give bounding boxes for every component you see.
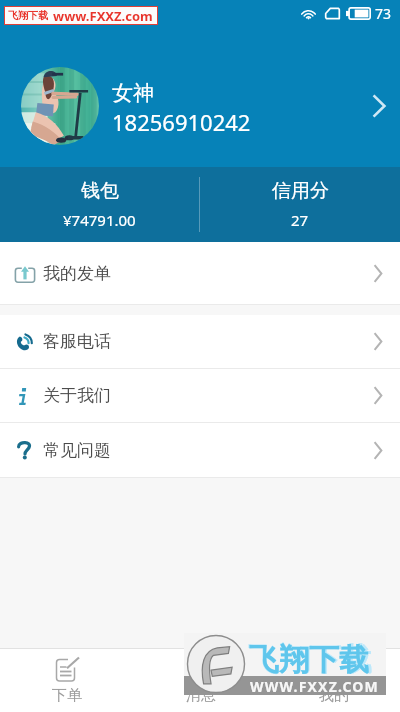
staticText: 飞翔下载: [8, 9, 48, 22]
staticText: 18256910242: [112, 107, 251, 137]
staticText: 信用分: [272, 179, 329, 203]
staticText: 我的发单: [43, 263, 111, 284]
staticText: 飞翔下载: [249, 641, 369, 679]
button[interactable]: 我的发单: [0, 242, 400, 304]
other: Profile details: [371, 94, 387, 118]
button[interactable]: 消息: [134, 649, 267, 712]
staticText: 常见问题: [43, 440, 111, 461]
button[interactable]: 信用分: [200, 167, 400, 242]
staticText: 女神: [112, 80, 154, 106]
staticText: ¥74791.00: [63, 210, 136, 230]
staticText: 27: [291, 210, 309, 230]
staticText: 客服电话: [43, 331, 111, 352]
button[interactable]: 钱包: [0, 167, 199, 242]
staticText: 飞翔下载: [248, 640, 372, 679]
button[interactable]: 常见问题: [0, 423, 400, 477]
button[interactable]: 关于我们: [0, 369, 400, 422]
staticText: 关于我们: [43, 385, 111, 406]
staticText: www.FXXZ.com: [53, 7, 153, 24]
button[interactable]: 我的: [267, 649, 400, 712]
staticText: 钱包: [81, 179, 119, 203]
staticText: WWW.FXXZ.COM: [250, 677, 380, 696]
staticText: 我的: [319, 686, 349, 705]
button[interactable]: 女神: [0, 26, 400, 167]
button[interactable]: 下单: [0, 649, 134, 712]
staticText: 下单: [52, 686, 82, 705]
staticText: 消息: [186, 686, 216, 705]
staticText: 73: [375, 4, 392, 23]
button[interactable]: 客服电话: [0, 315, 400, 368]
